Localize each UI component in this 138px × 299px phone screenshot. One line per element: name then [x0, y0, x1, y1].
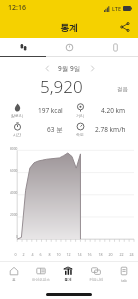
button[interactable]: tab	[110, 262, 138, 290]
staticText: 통계	[60, 22, 78, 33]
button[interactable]: 칼로리	[6, 101, 69, 120]
staticText: 9월 9일	[58, 64, 81, 73]
button[interactable]: Steps tab	[0, 38, 46, 56]
button[interactable]: 거리	[69, 101, 132, 120]
button[interactable]: Share	[116, 18, 134, 36]
staticText: tab	[121, 278, 127, 283]
staticText: 통계	[64, 278, 72, 283]
button[interactable]: 시간	[6, 120, 69, 139]
staticText: 8	[48, 252, 51, 257]
staticText: 4	[31, 252, 34, 257]
staticText: 걸음	[117, 86, 128, 93]
staticText: 12	[66, 252, 71, 257]
staticText: 2000	[10, 213, 18, 217]
button[interactable]: 마이오피스	[27, 262, 54, 290]
button[interactable]: Next day	[85, 61, 99, 75]
staticText: 5,920	[40, 75, 83, 97]
staticText: 0	[16, 235, 18, 239]
staticText: 거리	[76, 113, 84, 118]
staticText: 마이오피스	[32, 278, 50, 283]
staticText: 8000	[10, 147, 18, 151]
staticText: 홈	[12, 278, 16, 283]
staticText: 10	[56, 252, 61, 257]
staticText: 63 분	[47, 125, 63, 134]
staticText: 20	[108, 252, 113, 257]
staticText: 2.78 km/h	[95, 125, 126, 134]
button[interactable]: 홈	[0, 262, 27, 290]
staticText: 0	[14, 252, 17, 257]
staticText: 2	[22, 252, 25, 257]
button[interactable]: Sleep tab	[92, 38, 138, 56]
staticText: LTE	[112, 5, 121, 12]
staticText: 18	[98, 252, 103, 257]
staticText: 6	[39, 252, 42, 257]
button[interactable]: Activity tab	[46, 38, 92, 56]
button[interactable]: Previous day	[40, 61, 54, 75]
staticText: 속도	[76, 132, 84, 137]
staticText: 16	[87, 252, 92, 257]
button[interactable]: 커뮤니티	[82, 262, 110, 290]
button[interactable]: 속도	[69, 120, 132, 139]
staticText: 4.20 km	[101, 106, 126, 115]
staticText: 197 kcal	[38, 106, 63, 115]
staticText: 시간	[13, 132, 21, 137]
staticText: 커뮤니티	[89, 278, 104, 283]
staticText: 14	[77, 252, 82, 257]
staticText: 4000	[10, 191, 18, 195]
staticText: 칼로리	[11, 113, 23, 118]
staticText: 22	[119, 252, 124, 257]
staticText: 24	[129, 252, 134, 257]
staticText: 6000	[10, 169, 18, 173]
button[interactable]: 통계	[54, 262, 82, 290]
staticText: 12:16	[8, 3, 26, 13]
